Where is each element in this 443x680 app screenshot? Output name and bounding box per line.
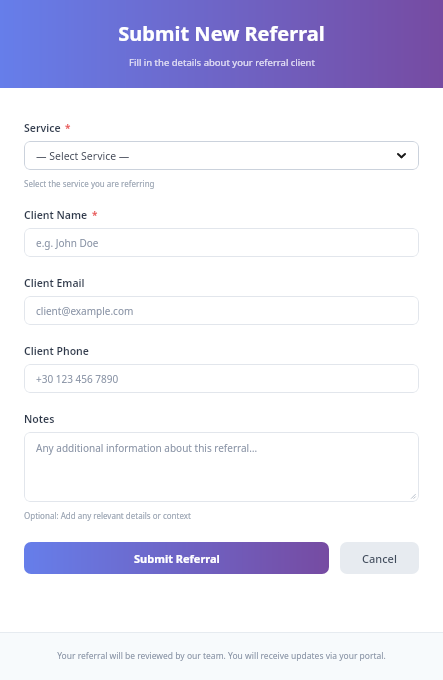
- button[interactable]: client@example.com: [24, 296, 419, 325]
- staticText: Any additional information about this re…: [36, 441, 258, 455]
- staticText: Client Phone: [24, 344, 89, 358]
- staticText: Service: [24, 121, 61, 135]
- staticText: Fill in the details about your referral …: [129, 56, 315, 69]
- staticText: Client Name: [24, 208, 88, 222]
- staticText: — Select Service —: [36, 149, 130, 163]
- button[interactable]: Any additional information about this re…: [24, 432, 419, 502]
- staticText: Submit New Referral: [118, 20, 325, 47]
- staticText: Submit Referral: [134, 551, 220, 566]
- button[interactable]: e.g. John Doe: [24, 228, 419, 257]
- staticText: Client Email: [24, 276, 85, 290]
- button[interactable]: — Select Service —: [24, 141, 419, 170]
- staticText: Notes: [24, 412, 55, 426]
- staticText: *: [65, 121, 71, 135]
- staticText: *: [92, 208, 98, 222]
- staticText: Cancel: [362, 551, 397, 566]
- other: Open service list: [396, 150, 407, 161]
- staticText: Your referral will be reviewed by our te…: [57, 650, 386, 662]
- staticText: +30 123 456 7890: [36, 372, 119, 386]
- staticText: client@example.com: [36, 304, 134, 318]
- button[interactable]: Cancel: [340, 542, 419, 574]
- staticText: Select the service you are referring: [24, 178, 155, 189]
- button[interactable]: Submit Referral: [24, 542, 329, 574]
- staticText: Optional: Add any relevant details or co…: [24, 510, 191, 521]
- button[interactable]: +30 123 456 7890: [24, 364, 419, 393]
- staticText: e.g. John Doe: [36, 236, 99, 250]
